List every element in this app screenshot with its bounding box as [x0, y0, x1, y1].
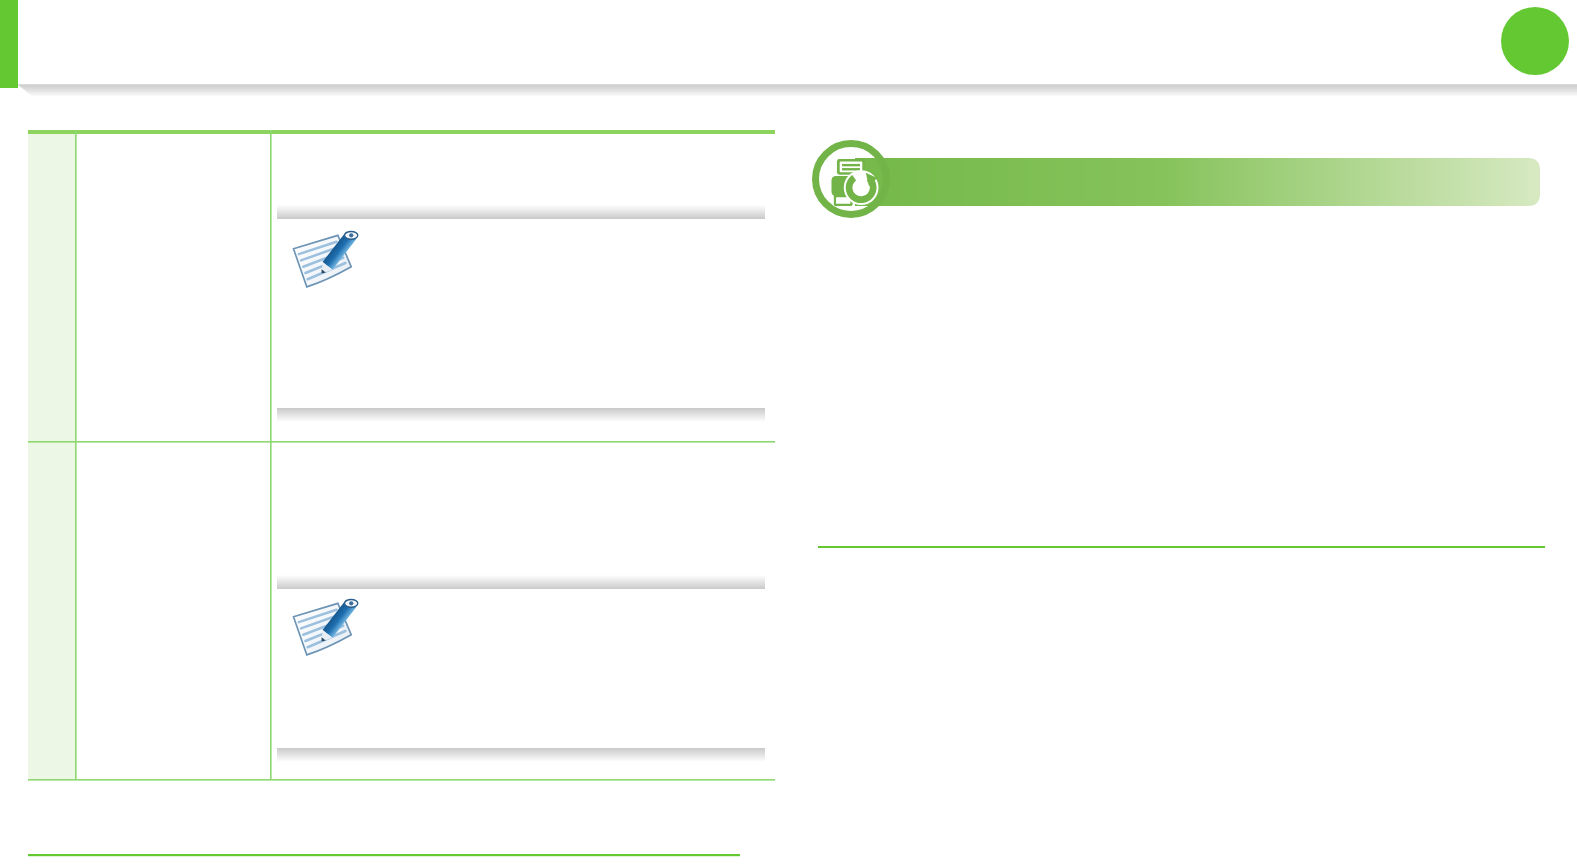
other: Printer troubleshooting section: [0, 0, 1577, 868]
